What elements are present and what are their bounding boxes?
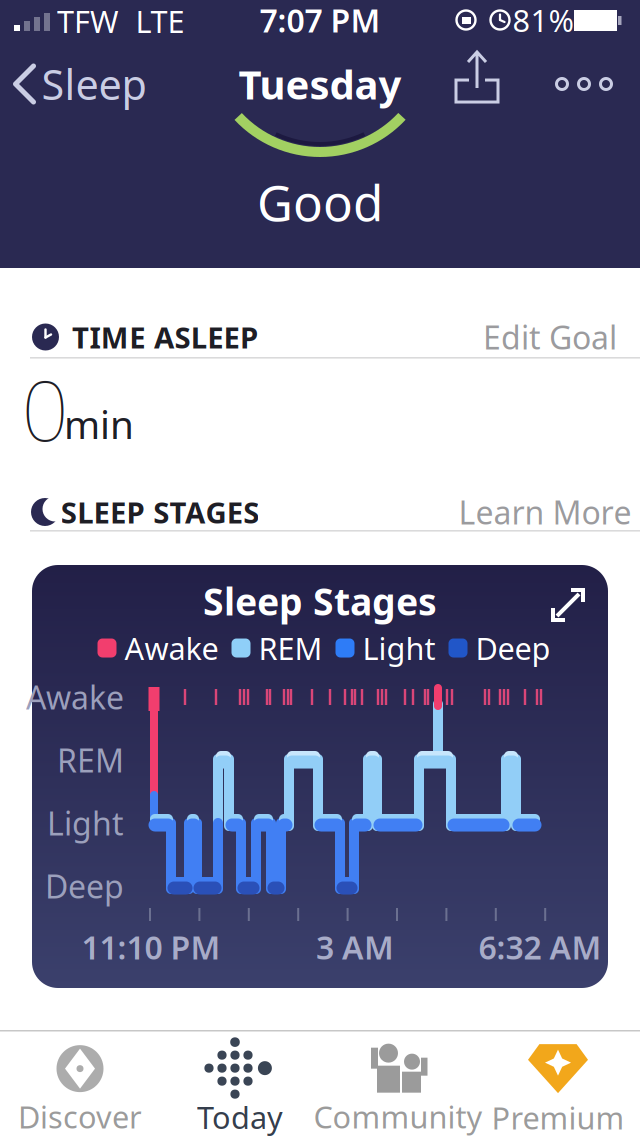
- staticText: 6:32 AM: [478, 926, 601, 968]
- staticText: Community: [313, 1096, 482, 1136]
- button[interactable]: Premium: [491, 1044, 624, 1136]
- staticText: SLEEP STAGES: [61, 492, 259, 531]
- staticText: Light: [362, 628, 435, 668]
- staticText: Awake: [124, 628, 218, 668]
- staticText: Tuesday: [238, 57, 401, 110]
- staticText: REM: [57, 739, 124, 781]
- button[interactable]: [456, 66, 498, 102]
- button[interactable]: Discover: [18, 1045, 142, 1136]
- staticText: Awake: [26, 676, 124, 718]
- staticText: 11:10 PM: [81, 926, 220, 968]
- staticText: TFW: [57, 1, 119, 41]
- staticText: Premium: [491, 1097, 624, 1136]
- staticText: Light: [47, 802, 124, 844]
- staticText: min: [64, 398, 134, 450]
- staticText: LTE: [135, 1, 184, 41]
- button[interactable]: Today: [197, 1045, 283, 1136]
- staticText: Today: [197, 1097, 283, 1136]
- staticText: 81%: [512, 0, 573, 40]
- staticText: Learn More: [458, 491, 631, 533]
- staticText: REM: [258, 628, 322, 668]
- button[interactable]: [553, 590, 583, 620]
- staticText: Deep: [45, 865, 124, 907]
- staticText: 7:07 PM: [259, 0, 380, 41]
- staticText: Sleep: [41, 57, 146, 111]
- staticText: Good: [257, 169, 383, 235]
- button[interactable]: Edit Goal: [483, 316, 617, 358]
- button[interactable]: [556, 78, 611, 89]
- button[interactable]: Sleep: [15, 57, 146, 111]
- button[interactable]: Learn More: [458, 491, 631, 533]
- staticText: 0: [21, 354, 68, 464]
- staticText: Deep: [475, 628, 550, 668]
- button[interactable]: Community: [313, 1045, 482, 1136]
- staticText: Edit Goal: [483, 316, 617, 358]
- staticText: Sleep Stages: [203, 576, 437, 626]
- staticText: 3 AM: [316, 926, 394, 968]
- staticText: TIME ASLEEP: [72, 317, 258, 356]
- staticText: Discover: [18, 1096, 142, 1136]
